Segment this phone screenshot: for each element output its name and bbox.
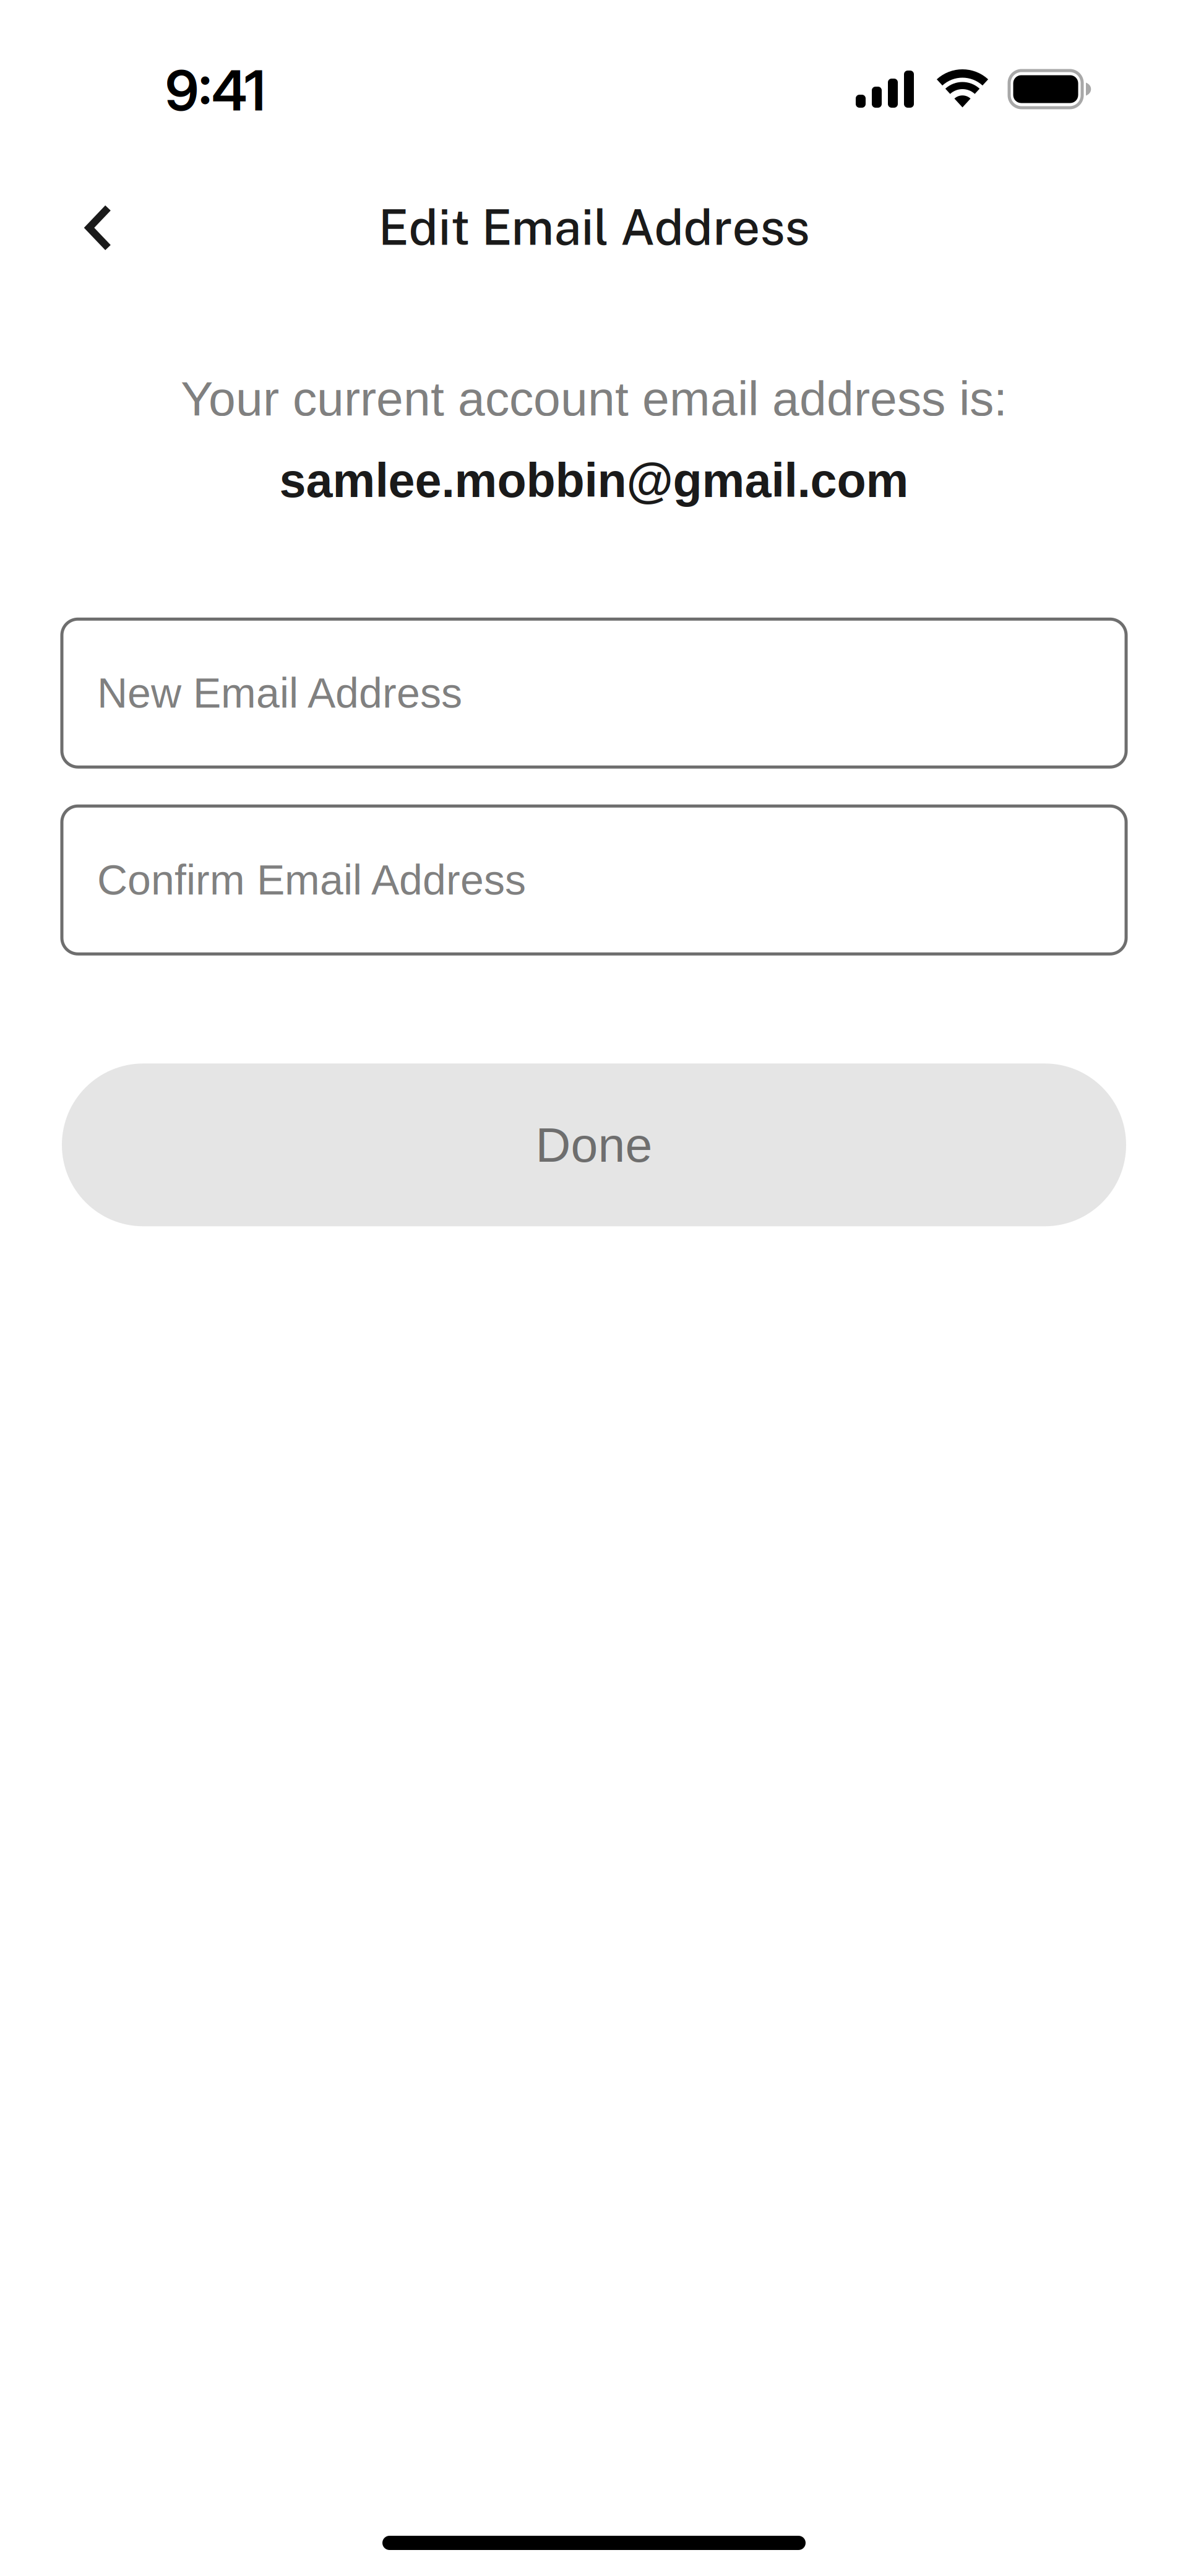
staticText: Edit Email Address bbox=[378, 199, 810, 256]
staticText: Your current account email address is: bbox=[181, 371, 1007, 426]
button[interactable]: Back bbox=[58, 199, 139, 256]
staticText: Confirm Email Address bbox=[97, 856, 526, 904]
staticText: Done bbox=[536, 1118, 652, 1172]
button[interactable]: Done bbox=[62, 1064, 1126, 1226]
staticText: samlee.mobbin@gmail.com bbox=[279, 454, 909, 507]
staticText: New Email Address bbox=[97, 670, 462, 717]
staticText: 9:41 bbox=[165, 57, 265, 124]
